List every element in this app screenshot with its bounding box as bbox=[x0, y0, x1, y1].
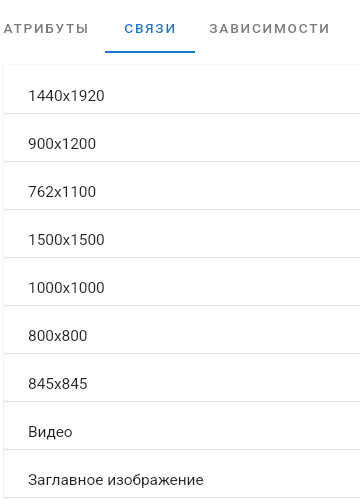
button[interactable]: 1000x1000 bbox=[4, 257, 360, 305]
button[interactable]: 900x1200 bbox=[4, 113, 360, 161]
button[interactable]: 1440x1920 bbox=[4, 65, 360, 113]
staticText: 1000x1000 bbox=[28, 279, 105, 297]
button[interactable]: АТРИБУТЫ bbox=[0, 0, 105, 51]
staticText: ЗАВИСИМОСТИ bbox=[209, 20, 331, 36]
staticText: АТРИБУТЫ bbox=[3, 20, 90, 36]
button[interactable]: Видео bbox=[4, 401, 360, 449]
staticText: 845x845 bbox=[28, 375, 88, 393]
button[interactable]: Заглавное изображение bbox=[4, 449, 360, 497]
staticText: 1500x1500 bbox=[28, 231, 105, 249]
staticText: Заглавное изображение bbox=[28, 471, 204, 489]
staticText: Видео bbox=[28, 423, 73, 441]
staticText: 900x1200 bbox=[28, 135, 97, 153]
staticText: СВЯЗИ bbox=[124, 20, 177, 36]
button[interactable]: СВЯЗИ bbox=[105, 0, 193, 51]
button[interactable]: 800x800 bbox=[4, 305, 360, 353]
button[interactable]: 1500x1500 bbox=[4, 209, 360, 257]
staticText: 800x800 bbox=[28, 327, 88, 345]
staticText: 1440x1920 bbox=[28, 87, 105, 105]
button[interactable]: 762x1100 bbox=[4, 161, 360, 209]
staticText: 762x1100 bbox=[28, 183, 97, 201]
button[interactable]: 845x845 bbox=[4, 353, 360, 401]
button[interactable]: ЗАВИСИМОСТИ bbox=[193, 0, 345, 51]
